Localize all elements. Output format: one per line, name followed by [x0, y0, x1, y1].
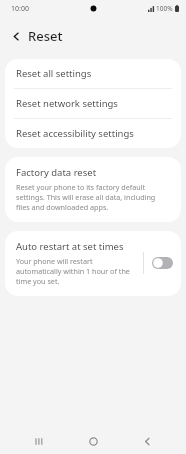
staticText: Reset all settings [16, 67, 92, 80]
button[interactable]: Auto restart at set times, off [144, 251, 181, 275]
button[interactable]: Auto restart at set times [5, 231, 181, 296]
button[interactable]: Navigate up [6, 26, 26, 46]
staticText: Reset accessibility settings [16, 127, 134, 140]
staticText: 100% [156, 4, 173, 13]
staticText: Reset network settings [16, 97, 118, 110]
button[interactable]: Factory data reset [5, 157, 181, 222]
staticText: Reset [28, 27, 63, 45]
staticText: Factory data reset [16, 166, 97, 179]
staticText: Reset your phone to its factory default … [16, 182, 170, 212]
staticText: 10:00 [11, 4, 29, 14]
button[interactable]: Back [132, 428, 162, 454]
button[interactable]: Recent apps [24, 428, 54, 454]
staticText: Auto restart at set times [16, 240, 124, 253]
button[interactable]: Home [78, 428, 108, 454]
button[interactable]: Reset network settings [5, 89, 181, 118]
staticText: Your phone will restart automatically wi… [16, 256, 137, 286]
button[interactable]: Reset accessibility settings [5, 119, 181, 148]
button[interactable]: Reset all settings [5, 59, 181, 88]
